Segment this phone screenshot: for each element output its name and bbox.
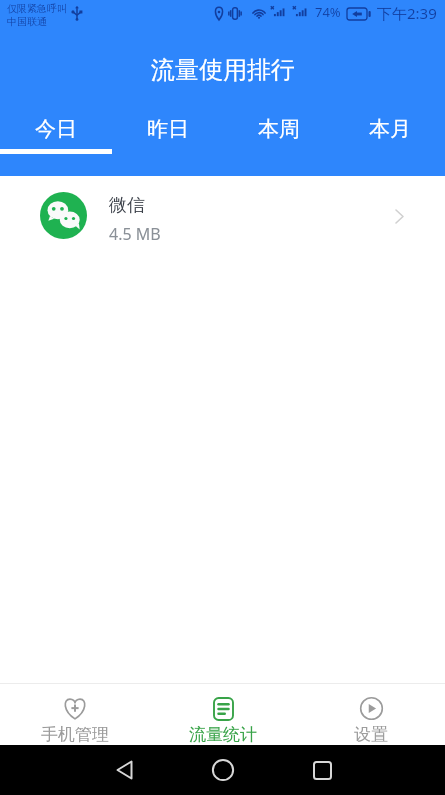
button[interactable]: 微信 [0,176,445,256]
button[interactable]: 本月 [334,108,445,176]
button[interactable]: 今日 [0,108,112,176]
staticText: 下午2:39 [377,3,437,23]
button[interactable]: 设置 [297,684,445,745]
staticText: 74% [315,3,341,21]
staticText: 中国联通 [7,15,47,28]
button[interactable]: Back [106,752,142,788]
staticText: 仅限紧急呼叫 [7,2,67,15]
staticText: 设置 [354,724,388,745]
button[interactable]: 昨日 [112,108,223,176]
staticText: 本月 [369,116,411,142]
staticText: 4.5 MB [109,223,161,245]
staticText: 流量统计 [189,724,257,745]
staticText: 昨日 [147,116,189,142]
staticText: 手机管理 [41,724,109,745]
staticText: 流量使用排行 [151,55,295,85]
staticText: 今日 [35,116,77,142]
staticText: 本周 [258,116,300,142]
staticText: 微信 [109,194,145,217]
button[interactable]: 手机管理 [0,684,149,745]
button[interactable]: 本周 [223,108,334,176]
button[interactable]: Home [205,752,241,788]
button[interactable]: 流量统计 [149,684,297,745]
button[interactable]: Recent apps [304,752,340,788]
